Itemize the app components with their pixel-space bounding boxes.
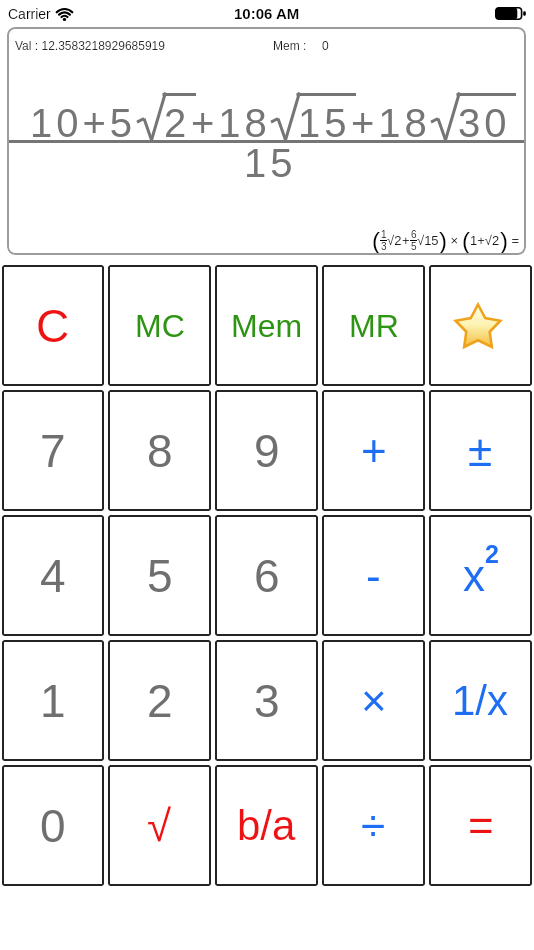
staticText: +18 <box>191 101 271 146</box>
staticText: 8 <box>147 425 173 476</box>
staticText: 2 <box>485 540 499 568</box>
staticText: ( <box>372 227 380 254</box>
staticText: 6 <box>254 550 280 601</box>
staticText: ) <box>439 227 447 254</box>
staticText: 15 <box>244 141 297 186</box>
button[interactable]: 2 <box>108 640 211 761</box>
staticText: 1 <box>381 229 387 240</box>
staticText: ± <box>468 426 493 475</box>
staticText: √2 <box>387 233 402 248</box>
staticText: - <box>366 551 381 600</box>
staticText: + <box>361 426 387 475</box>
button[interactable]: b/a <box>215 765 318 886</box>
staticText: 0 <box>322 39 329 52</box>
staticText: 10:06 AM <box>234 5 300 22</box>
button[interactable]: 3 <box>215 640 318 761</box>
staticText: = <box>468 801 494 850</box>
button[interactable]: ± <box>429 390 532 511</box>
staticText: 5 <box>147 550 173 601</box>
button[interactable]: 5 <box>108 515 211 636</box>
staticText: +18 <box>351 101 431 146</box>
staticText: × <box>361 676 387 725</box>
button[interactable]: 7 <box>2 390 104 511</box>
staticText: 10+5 <box>30 101 137 146</box>
staticText: Mem <box>231 308 303 344</box>
button[interactable] <box>429 265 532 386</box>
button[interactable]: + <box>322 390 425 511</box>
button[interactable]: 4 <box>2 515 104 636</box>
staticText: 1 <box>40 675 66 726</box>
staticText: 5 <box>411 241 417 252</box>
button[interactable]: 0 <box>2 765 104 886</box>
staticText: 1/x <box>452 677 509 724</box>
button[interactable]: 6 <box>215 515 318 636</box>
staticText: MR <box>349 308 399 344</box>
button[interactable]: 1/x <box>429 640 532 761</box>
staticText: C <box>36 300 70 351</box>
staticText: Carrier <box>8 6 51 22</box>
staticText: = <box>508 233 520 248</box>
staticText: ( <box>462 227 470 254</box>
staticText: 15 <box>298 101 351 146</box>
staticText: 2 <box>164 101 191 146</box>
staticText: 6 <box>411 229 417 240</box>
staticText: ) <box>500 227 508 254</box>
button[interactable]: - <box>322 515 425 636</box>
button[interactable]: √ <box>108 765 211 886</box>
staticText: 4 <box>40 550 66 601</box>
button[interactable]: C <box>2 265 104 386</box>
button[interactable]: × <box>322 640 425 761</box>
button[interactable]: 9 <box>215 390 318 511</box>
staticText: 3 <box>381 241 387 252</box>
staticText: x <box>463 551 485 600</box>
staticText: ÷ <box>361 801 386 850</box>
staticText: Val : 12.3583218929685919 <box>15 39 165 52</box>
staticText: 3 <box>254 675 280 726</box>
button[interactable]: 8 <box>108 390 211 511</box>
staticText: √15 <box>417 233 439 248</box>
button[interactable]: 1 <box>2 640 104 761</box>
staticText: × <box>447 233 462 248</box>
staticText: 2 <box>147 675 173 726</box>
staticText: MC <box>135 308 185 344</box>
button[interactable]: MR <box>322 265 425 386</box>
staticText: + <box>402 233 410 248</box>
staticText: Mem : <box>273 39 307 52</box>
staticText: 0 <box>40 800 66 851</box>
button[interactable]: ÷ <box>322 765 425 886</box>
button[interactable]: = <box>429 765 532 886</box>
button[interactable]: MC <box>108 265 211 386</box>
staticText: b/a <box>237 802 296 849</box>
staticText: 30 <box>458 101 511 146</box>
staticText: √ <box>147 801 172 850</box>
button[interactable]: x <box>429 515 532 636</box>
staticText: 7 <box>40 425 66 476</box>
staticText: 1+√2 <box>470 233 500 248</box>
button[interactable]: Mem <box>215 265 318 386</box>
staticText: 9 <box>254 425 280 476</box>
